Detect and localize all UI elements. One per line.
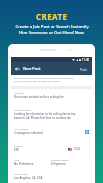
staticText: Post Category xyxy=(14,128,29,131)
staticText: (Post) in order to get the matching Suit… xyxy=(14,80,60,83)
staticText: Looking for electrician to fix ceiling f… xyxy=(14,112,76,116)
staticText: Time xyxy=(14,159,20,162)
staticText: 3 categories selected xyxy=(14,131,43,135)
staticText: E-Payment xyxy=(51,162,66,166)
staticText: USD xyxy=(74,147,81,151)
staticText: No Preference xyxy=(14,162,34,166)
staticText: 11:30 xyxy=(82,58,90,62)
staticText: Post Description xyxy=(14,109,31,112)
button[interactable]: Back xyxy=(14,65,21,72)
staticText: Los Angeles, CA, USA xyxy=(14,176,43,180)
button[interactable]: Post xyxy=(79,66,88,72)
staticText: CREATE xyxy=(36,11,68,22)
staticText: Post xyxy=(80,67,87,71)
staticText: home in LA. Please feel free to contact … xyxy=(14,116,71,120)
staticText: Electrician needed to fix a ceiling fan xyxy=(14,95,64,99)
staticText: Hire Someone or Get Hired Now xyxy=(19,29,84,35)
staticText: Select the criteria that describe your J… xyxy=(14,77,75,80)
staticText: New Post xyxy=(23,66,41,71)
staticText: Post Location xyxy=(14,173,28,176)
staticText: Budget xyxy=(14,145,22,148)
staticText: Payment Method xyxy=(51,159,69,162)
staticText: $90 xyxy=(14,148,19,152)
staticText: Create a Job Post or Search Instantly xyxy=(15,23,89,29)
staticText: Post Title xyxy=(14,92,24,95)
